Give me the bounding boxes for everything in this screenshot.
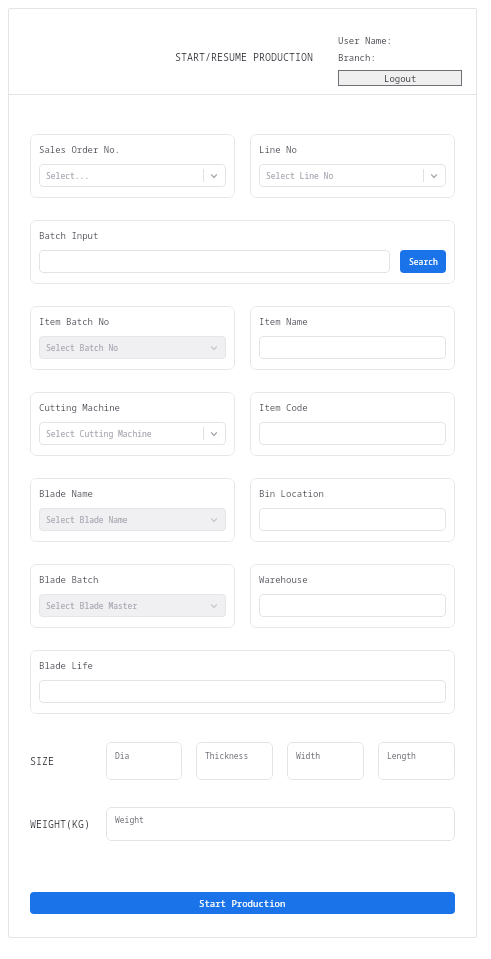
button[interactable]: Text field (39, 680, 446, 703)
button[interactable]: Logout (338, 70, 462, 86)
staticText: Cutting Machine (39, 401, 121, 413)
button[interactable]: Width (287, 742, 364, 780)
button[interactable]: Select Batch No (39, 336, 226, 359)
button[interactable]: Length (378, 742, 455, 780)
button[interactable]: Start Production (30, 892, 455, 914)
staticText: Select Blade Name (46, 514, 203, 525)
staticText: Start Production (199, 897, 286, 909)
staticText: Blade Batch (39, 573, 99, 585)
staticText: Batch Input (39, 229, 99, 241)
staticText: Branch: (338, 51, 376, 63)
button[interactable]: Text field (259, 508, 446, 531)
staticText: SIZE (30, 754, 54, 768)
staticText: Select Blade Master (46, 600, 203, 611)
staticText: Select Batch No (46, 342, 203, 353)
button[interactable]: Text field (259, 336, 446, 359)
staticText: Bin Location (259, 487, 324, 499)
staticText: Weight (115, 814, 144, 825)
staticText: Search (409, 256, 438, 267)
button[interactable]: Select Line No (259, 164, 446, 187)
button[interactable]: Text field (259, 594, 446, 617)
staticText: Length (387, 750, 416, 761)
staticText: Width (296, 750, 320, 761)
button[interactable]: Select Cutting Machine (39, 422, 226, 445)
button[interactable]: Dia (106, 742, 182, 780)
staticText: Blade Name (39, 487, 94, 499)
staticText: WEIGHT(KG) (30, 817, 90, 831)
staticText: Blade Life (39, 659, 94, 671)
staticText: Select Cutting Machine (46, 428, 203, 439)
staticText: Sales Order No. (39, 143, 121, 155)
button[interactable]: Text field (259, 422, 446, 445)
button[interactable]: Batch input (39, 250, 390, 273)
button[interactable]: Select... (39, 164, 226, 187)
button[interactable]: Weight (106, 807, 455, 841)
staticText: Logout (384, 72, 417, 84)
staticText: START/RESUME PRODUCTION (175, 50, 313, 64)
staticText: Select... (46, 170, 203, 181)
staticText: Item Name (259, 315, 308, 327)
button[interactable]: Select Blade Master (39, 594, 226, 617)
staticText: Select Line No (266, 170, 423, 181)
button[interactable]: Select Blade Name (39, 508, 226, 531)
staticText: Item Code (259, 401, 308, 413)
staticText: Item Batch No (39, 315, 110, 327)
button[interactable]: Search (400, 250, 446, 273)
staticText: Dia (115, 750, 130, 761)
staticText: Thickness (205, 750, 249, 761)
button[interactable]: Thickness (196, 742, 273, 780)
staticText: Line No (259, 143, 297, 155)
staticText: User Name: (338, 34, 393, 46)
staticText: Warehouse (259, 573, 308, 585)
